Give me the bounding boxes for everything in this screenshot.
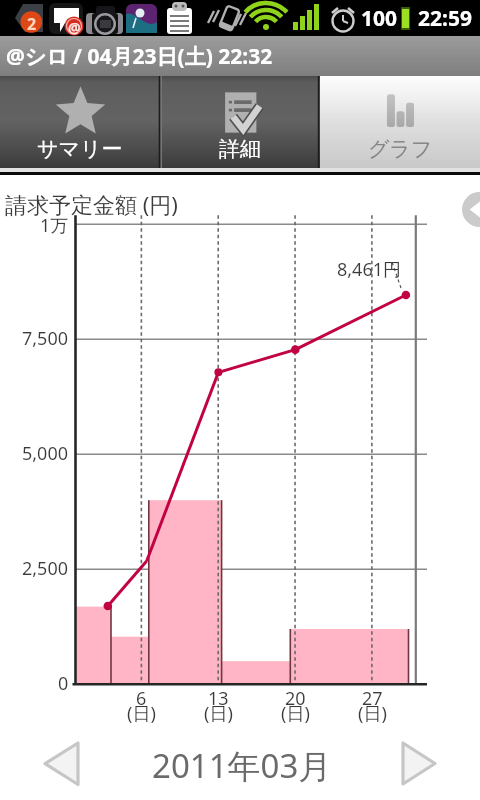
staticText: @シロ / 04月23日(土) 22:32 xyxy=(6,42,273,71)
staticText: 2 xyxy=(27,13,37,35)
staticText: 詳細 xyxy=(219,136,261,162)
staticText: 2011年03月 xyxy=(152,743,332,788)
button[interactable]: グラフ xyxy=(320,76,480,168)
staticText: 2,500 xyxy=(22,556,69,581)
staticText: 22:59 xyxy=(418,4,472,33)
staticText: @ xyxy=(68,18,81,37)
staticText: 7,500 xyxy=(22,326,69,351)
staticText: 27 xyxy=(362,686,383,711)
staticText: (日) xyxy=(358,701,387,726)
button[interactable]: Previous month xyxy=(27,732,96,794)
button[interactable]: Previous page xyxy=(462,192,480,227)
button[interactable]: サマリー xyxy=(0,76,160,168)
staticText: 請求予定金額 (円) xyxy=(5,189,178,219)
staticText: 13 xyxy=(208,686,229,711)
staticText: (日) xyxy=(281,701,310,726)
staticText: 5,000 xyxy=(22,441,69,466)
staticText: 100 xyxy=(361,4,398,33)
staticText: 6 xyxy=(136,686,147,711)
button[interactable]: 詳細 xyxy=(160,76,320,168)
staticText: (日) xyxy=(127,701,156,726)
staticText: 20 xyxy=(285,686,306,711)
button[interactable]: Next month xyxy=(385,732,454,794)
staticText: サマリー xyxy=(37,136,123,162)
staticText: 1万 xyxy=(40,213,69,238)
staticText: グラフ xyxy=(368,136,433,162)
button[interactable]: @シロ / 04月23日(土) 22:32 xyxy=(0,36,480,76)
staticText: (日) xyxy=(204,701,233,726)
staticText: 0 xyxy=(58,671,69,696)
staticText: 8,461円 xyxy=(337,257,402,282)
